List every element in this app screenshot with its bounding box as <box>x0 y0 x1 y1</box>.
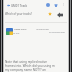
staticText: my company name NOT?? an <box>5 68 46 72</box>
staticText: Which of your tracks? <box>5 12 32 16</box>
button[interactable]: Back <box>5 2 12 9</box>
button[interactable]: Archive <box>44 1 52 9</box>
staticText: Home Conn <box>14 28 27 31</box>
staticText: Unsubscribe <box>36 28 49 31</box>
staticText: 30 minutes ago <box>49 31 65 34</box>
staticText: Note that using replied native <box>5 60 47 64</box>
button[interactable]: Delete <box>52 1 60 9</box>
staticText: to me <box>13 32 20 35</box>
staticText: frames into. Which did you using m <box>5 64 55 68</box>
button[interactable]: Home Conn <box>4 24 68 38</box>
button[interactable]: Star <box>47 11 53 17</box>
button[interactable]: Reply <box>56 11 63 18</box>
button[interactable]: More options <box>60 1 67 8</box>
staticText: GM01 Track <box>11 4 28 8</box>
